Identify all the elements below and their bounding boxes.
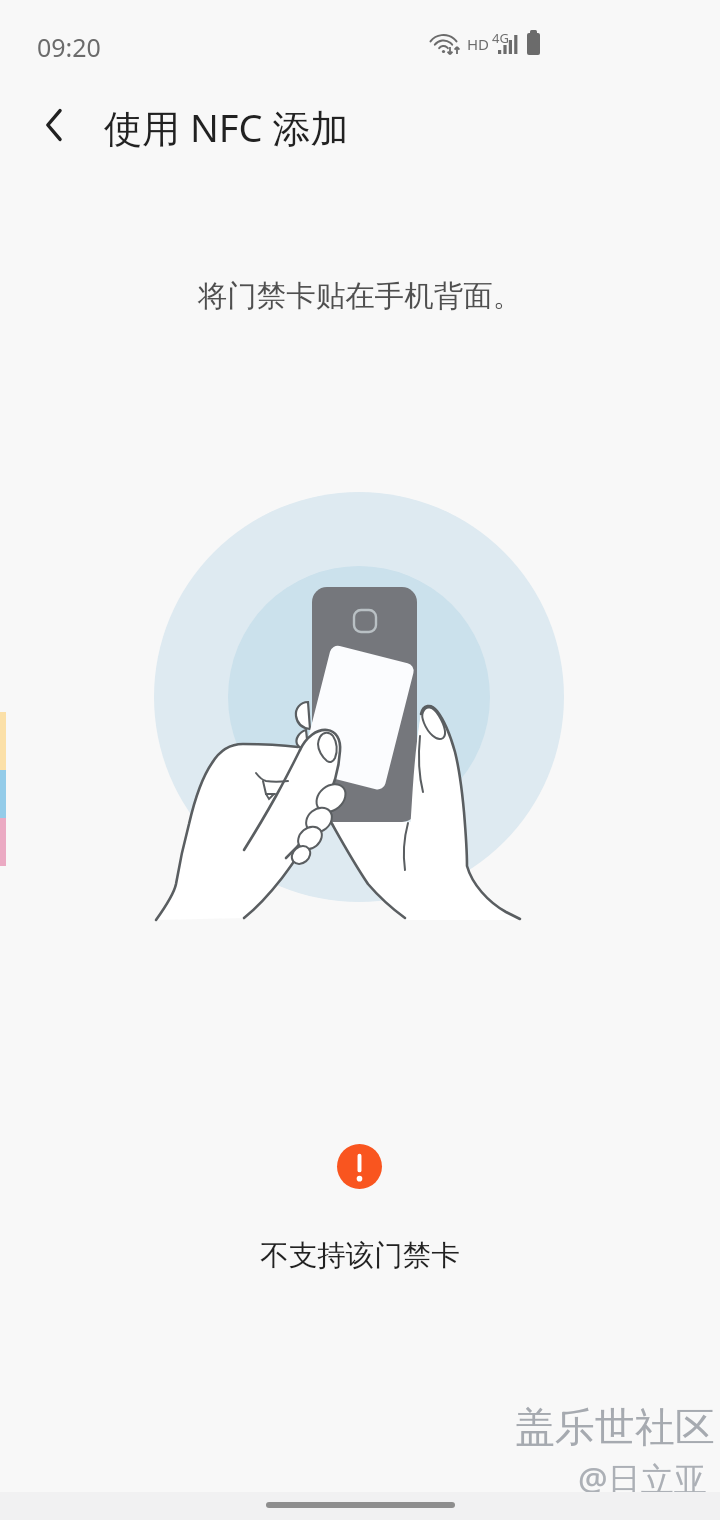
staticText: 不支持该门禁卡 bbox=[0, 1238, 720, 1274]
staticText: 使用 NFC 添加 bbox=[104, 101, 349, 153]
staticText: 盖乐世社区 bbox=[517, 1404, 717, 1454]
staticText: @日立亚 bbox=[580, 1458, 709, 1503]
staticText: 4G bbox=[492, 29, 509, 47]
button[interactable]: Back bbox=[26, 96, 84, 154]
staticText: 09:20 bbox=[37, 30, 101, 64]
staticText: @日立亚 bbox=[578, 1456, 707, 1501]
staticText: 盖乐世社区 bbox=[515, 1402, 715, 1452]
staticText: HD bbox=[467, 34, 490, 54]
staticText: 将门禁卡贴在手机背面。 bbox=[0, 278, 720, 315]
